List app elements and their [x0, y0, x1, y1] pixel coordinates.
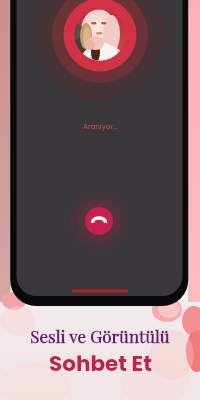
button[interactable]: End call	[69, 191, 129, 251]
staticText: Aranıyor...	[83, 122, 118, 132]
staticText: Sesli ve Görüntülü	[30, 325, 170, 348]
staticText: Sohbet Et	[49, 348, 152, 378]
